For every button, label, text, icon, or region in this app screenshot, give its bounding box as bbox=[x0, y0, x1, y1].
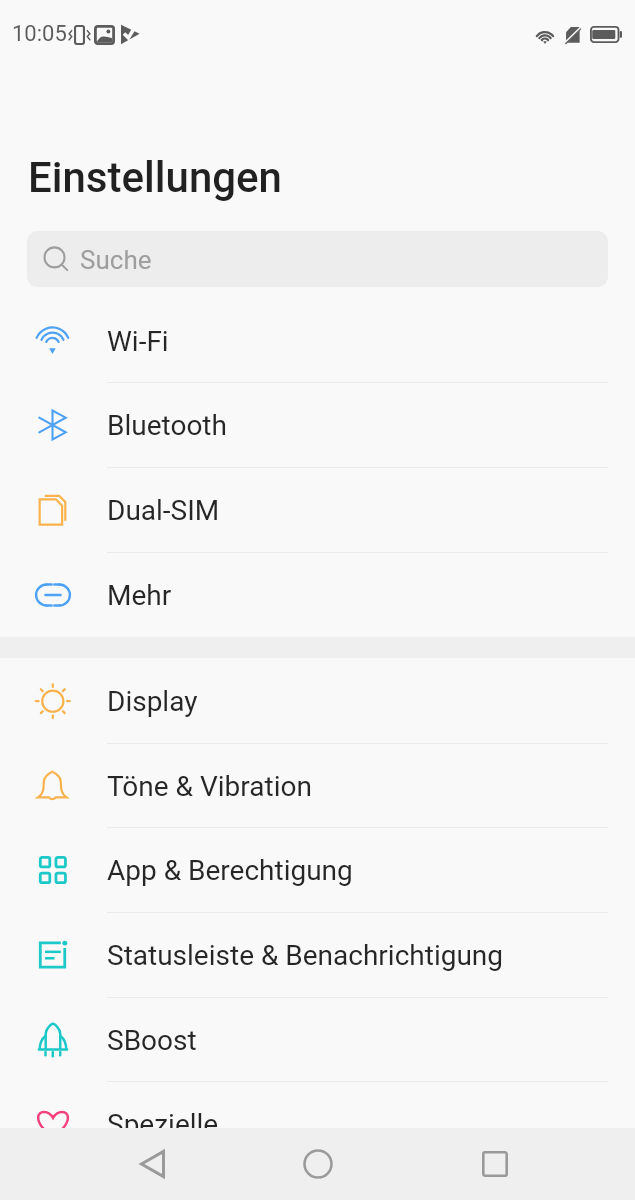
staticText: Suche bbox=[80, 245, 152, 275]
button[interactable]: App & Berechtigung bbox=[0, 827, 635, 912]
button[interactable]: Spezielle bbox=[0, 1081, 635, 1166]
staticText: Spezielle bbox=[107, 1108, 219, 1141]
staticText: Einstellungen bbox=[28, 153, 282, 202]
button[interactable]: Back bbox=[122, 1134, 182, 1194]
button[interactable]: Display bbox=[0, 658, 635, 743]
button[interactable]: Home bbox=[288, 1134, 348, 1194]
staticText: App & Berechtigung bbox=[107, 854, 353, 887]
staticText: Wi-Fi bbox=[107, 325, 169, 358]
staticText: Bluetooth bbox=[107, 409, 227, 442]
button[interactable]: Bluetooth bbox=[0, 382, 635, 467]
staticText: Mehr bbox=[107, 579, 172, 612]
staticText: Statusleiste & Benachrichtigung bbox=[107, 939, 504, 972]
button[interactable]: Suche bbox=[27, 231, 608, 287]
staticText: Display bbox=[107, 685, 198, 718]
staticText: Dual-SIM bbox=[107, 494, 220, 527]
button[interactable]: SBoost bbox=[0, 997, 635, 1082]
staticText: Töne & Vibration bbox=[107, 770, 312, 803]
button[interactable]: Mehr bbox=[0, 552, 635, 637]
button[interactable]: Wi-Fi bbox=[0, 298, 635, 383]
staticText: 10:05 bbox=[12, 21, 67, 47]
button[interactable]: Dual-SIM bbox=[0, 467, 635, 552]
button[interactable]: Recents bbox=[465, 1134, 525, 1194]
button[interactable]: Statusleiste & Benachrichtigung bbox=[0, 912, 635, 997]
button[interactable]: Töne & Vibration bbox=[0, 743, 635, 828]
staticText: SBoost bbox=[107, 1024, 197, 1057]
